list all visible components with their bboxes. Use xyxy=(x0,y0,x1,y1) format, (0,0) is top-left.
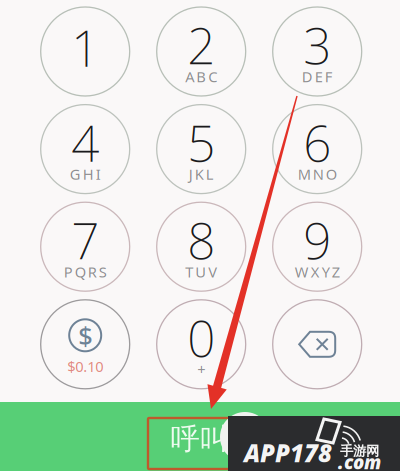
staticText: 手游网 xyxy=(340,443,379,459)
staticText: T U V xyxy=(185,262,217,281)
staticText: 5 xyxy=(187,110,215,175)
button[interactable]: 8 xyxy=(143,198,259,295)
staticText: 7 xyxy=(71,207,99,273)
staticText: 呼叫 xyxy=(170,421,228,457)
staticText: 3 xyxy=(303,12,331,78)
staticText: .com xyxy=(338,450,381,471)
button[interactable]: Delete xyxy=(259,295,375,393)
staticText: M N O xyxy=(298,164,337,184)
staticText: 1 xyxy=(71,15,99,80)
staticText: $0.10 xyxy=(67,357,103,376)
button[interactable]: 0 xyxy=(143,295,259,393)
staticText: J K L xyxy=(189,164,214,184)
staticText: + xyxy=(197,360,205,379)
button[interactable]: 5 xyxy=(143,100,259,198)
button[interactable]: 6 xyxy=(259,100,375,198)
staticText: D E F xyxy=(302,67,333,86)
button[interactable]: 呼叫 xyxy=(0,402,400,471)
button[interactable]: 2 xyxy=(143,3,259,100)
staticText: A B C xyxy=(185,67,217,86)
staticText: G H I xyxy=(70,164,101,184)
button[interactable]: 7 xyxy=(27,198,143,295)
staticText: W X Y Z xyxy=(295,262,340,281)
staticText: 6 xyxy=(303,110,331,175)
button[interactable]: Pay 10 cents xyxy=(27,295,143,393)
button[interactable]: 1 xyxy=(27,3,143,100)
staticText: 2 xyxy=(187,12,215,78)
staticText: APP178 xyxy=(244,437,332,469)
staticText: 4 xyxy=(71,110,99,175)
staticText: P Q R S xyxy=(64,262,107,281)
button[interactable]: 4 xyxy=(27,100,143,198)
staticText: 8 xyxy=(187,207,215,273)
staticText: 0 xyxy=(187,305,215,370)
staticText: 9 xyxy=(303,207,331,273)
button[interactable]: 3 xyxy=(259,3,375,100)
button[interactable]: 9 xyxy=(259,198,375,295)
staticText: $ xyxy=(78,318,92,352)
